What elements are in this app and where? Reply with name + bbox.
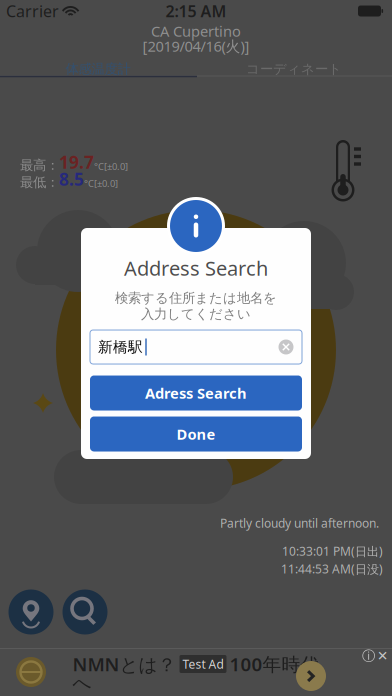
staticText: [2019/04/16(火)] <box>142 36 249 56</box>
staticText: 10:33:01 PM(日出) <box>282 543 383 559</box>
staticText: 8.5 <box>59 167 84 190</box>
staticText: Carrier <box>6 0 59 22</box>
staticText: 新橋駅 <box>98 338 143 356</box>
button[interactable]: Search <box>62 589 107 634</box>
staticText: ⓘ <box>362 648 375 664</box>
staticText: 11:44:53 AM(日没) <box>281 561 383 577</box>
staticText: 100年時代 <box>229 652 319 676</box>
staticText: 最高： <box>20 157 59 173</box>
button[interactable]: Adress Search <box>90 375 302 410</box>
staticText: 入力してください <box>141 306 251 322</box>
staticText: Partly cloudy until afternoon. <box>220 515 379 531</box>
staticText: Test Ad <box>182 656 223 672</box>
button[interactable]: Done <box>90 416 302 451</box>
staticText: °C[±0.0] <box>94 160 128 172</box>
staticText: Done <box>176 424 215 444</box>
staticText: 体感温度計 <box>65 61 130 77</box>
staticText: 検索する住所または地名を <box>115 290 277 306</box>
staticText: Address Search <box>124 255 268 281</box>
staticText: ✕ <box>377 648 388 663</box>
staticText: NMNとは？ <box>72 652 176 676</box>
staticText: 2:15 AM <box>165 0 226 22</box>
button[interactable]: コーディネート <box>196 56 392 82</box>
staticText: コーディネート <box>246 61 342 77</box>
button[interactable]: NMNとは？ <box>0 648 392 696</box>
staticText: °C[±0.0] <box>84 177 118 189</box>
button[interactable]: Current location <box>8 589 53 634</box>
button[interactable]: Clear text <box>274 335 298 359</box>
staticText: 19.7 <box>59 150 94 173</box>
staticText: Adress Search <box>145 383 247 403</box>
button[interactable]: 体感温度計 <box>0 56 196 82</box>
staticText: へ <box>72 671 91 694</box>
staticText: CA Cupertino <box>151 21 241 41</box>
staticText: 最低： <box>20 174 59 190</box>
